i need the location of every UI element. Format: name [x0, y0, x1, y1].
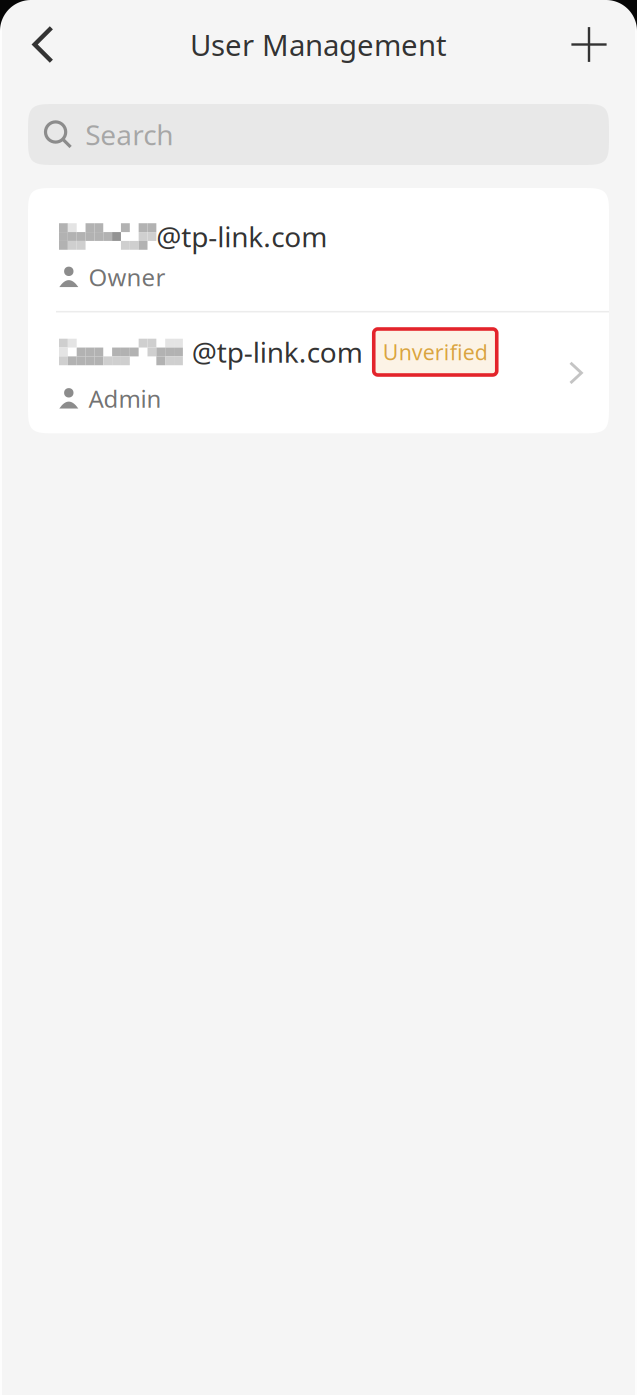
staticText: Owner	[89, 261, 166, 293]
staticText: @tp-link.com	[156, 218, 327, 255]
staticText: Unverified	[383, 338, 488, 366]
button[interactable]: @tp-link.com	[28, 188, 609, 311]
button[interactable]: Search	[28, 104, 609, 165]
staticText: User Management	[190, 25, 447, 64]
button[interactable]: @tp-link.com	[28, 312, 609, 433]
staticText: @tp-link.com	[192, 333, 363, 371]
staticText: Search	[85, 116, 173, 153]
button[interactable]: Add user	[559, 13, 619, 75]
staticText: Admin	[89, 382, 162, 414]
button[interactable]: Back	[13, 13, 73, 75]
